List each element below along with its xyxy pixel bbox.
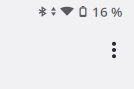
staticText: 16 % [92, 3, 122, 20]
button[interactable]: More options [104, 36, 124, 64]
